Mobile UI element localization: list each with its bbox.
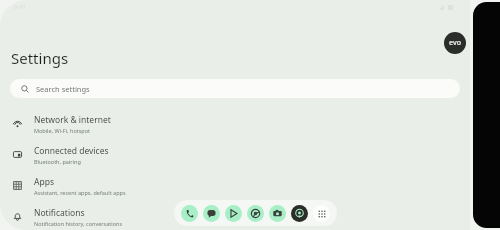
button[interactable]: Connected devices xyxy=(0,139,470,170)
button[interactable]: Camera xyxy=(269,205,286,222)
staticText: Notifications xyxy=(34,207,85,219)
button[interactable]: Network & internet xyxy=(0,108,470,139)
button[interactable]: Phone xyxy=(181,205,198,222)
button[interactable]: Play Store xyxy=(225,205,242,222)
staticText: 9:41 xyxy=(14,3,26,11)
staticText: Apps xyxy=(34,176,54,188)
staticText: Assistant, recent apps, default apps xyxy=(34,189,126,196)
button[interactable]: Notifications xyxy=(0,201,470,230)
staticText: Search settings xyxy=(36,84,90,94)
button[interactable]: All apps xyxy=(313,205,330,222)
staticText: Network & internet xyxy=(34,114,111,126)
button[interactable]: Chrome xyxy=(247,205,264,222)
staticText: evo xyxy=(449,38,461,48)
staticText: Settings xyxy=(11,48,69,68)
button[interactable]: Messages xyxy=(203,205,220,222)
staticText: Bluetooth, pairing xyxy=(34,158,81,165)
staticText: Connected devices xyxy=(34,145,109,157)
button[interactable]: Apps xyxy=(0,170,470,201)
button[interactable]: Maps xyxy=(291,205,308,222)
staticText: Mobile, Wi-Fi, hotspot xyxy=(34,127,91,134)
button[interactable]: Account avatar xyxy=(444,32,466,54)
button[interactable]: Search settings xyxy=(10,79,460,98)
staticText: Notification history, conversations xyxy=(34,220,123,227)
